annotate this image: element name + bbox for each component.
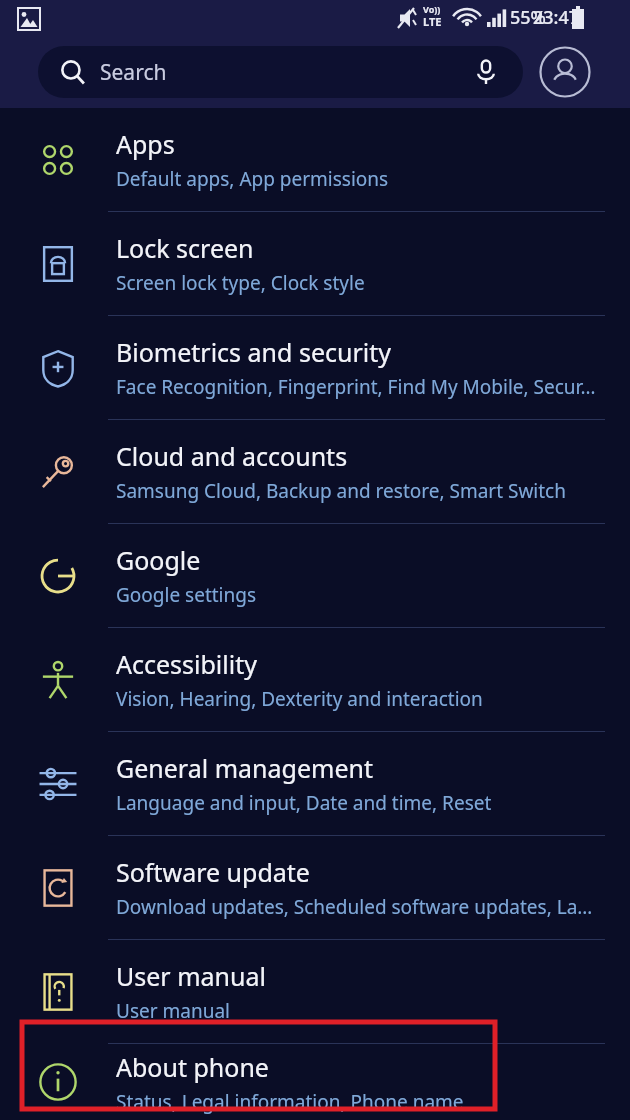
button[interactable]: Cloud and accounts	[0, 420, 630, 523]
staticText: Samsung Cloud, Backup and restore, Smart…	[116, 478, 566, 504]
button[interactable]: Account	[539, 46, 591, 98]
staticText: Face Recognition, Fingerprint, Find My M…	[116, 374, 596, 400]
staticText: 23:47	[533, 5, 630, 30]
button[interactable]: Search	[38, 46, 523, 98]
staticText: Apps	[116, 127, 175, 161]
button[interactable]: About phone	[0, 1044, 630, 1120]
staticText: Vision, Hearing, Dexterity and interacti…	[116, 686, 483, 712]
button[interactable]: Google	[0, 524, 630, 627]
staticText: Default apps, App permissions	[116, 166, 389, 192]
staticText: Download updates, Scheduled software upd…	[116, 894, 593, 920]
staticText: Status, Legal information, Phone name	[116, 1089, 464, 1115]
staticText: Vo))	[423, 3, 441, 15]
staticText: Lock screen	[116, 231, 254, 265]
button[interactable]: Lock screen	[0, 212, 630, 315]
staticText: About phone	[116, 1050, 269, 1084]
staticText: Screen lock type, Clock style	[116, 270, 365, 296]
staticText: User manual	[116, 998, 230, 1024]
staticText: Cloud and accounts	[116, 439, 348, 473]
button[interactable]: Apps	[0, 108, 630, 211]
staticText: Software update	[116, 855, 310, 889]
button[interactable]: Voice search	[471, 57, 501, 87]
button[interactable]: Accessibility	[0, 628, 630, 731]
button[interactable]: Biometrics and security	[0, 316, 630, 419]
button[interactable]: General management	[0, 732, 630, 835]
staticText: Google settings	[116, 582, 257, 608]
staticText: Google	[116, 543, 201, 577]
staticText: Accessibility	[116, 647, 257, 681]
staticText: General management	[116, 751, 373, 785]
button[interactable]: User manual	[0, 940, 630, 1043]
button[interactable]: Software update	[0, 836, 630, 939]
staticText: LTE	[423, 14, 442, 29]
staticText: 55%	[510, 5, 546, 30]
staticText: Biometrics and security	[116, 335, 392, 369]
staticText: Language and input, Date and time, Reset	[116, 790, 492, 816]
staticText: Search	[100, 58, 167, 87]
staticText: User manual	[116, 959, 266, 993]
